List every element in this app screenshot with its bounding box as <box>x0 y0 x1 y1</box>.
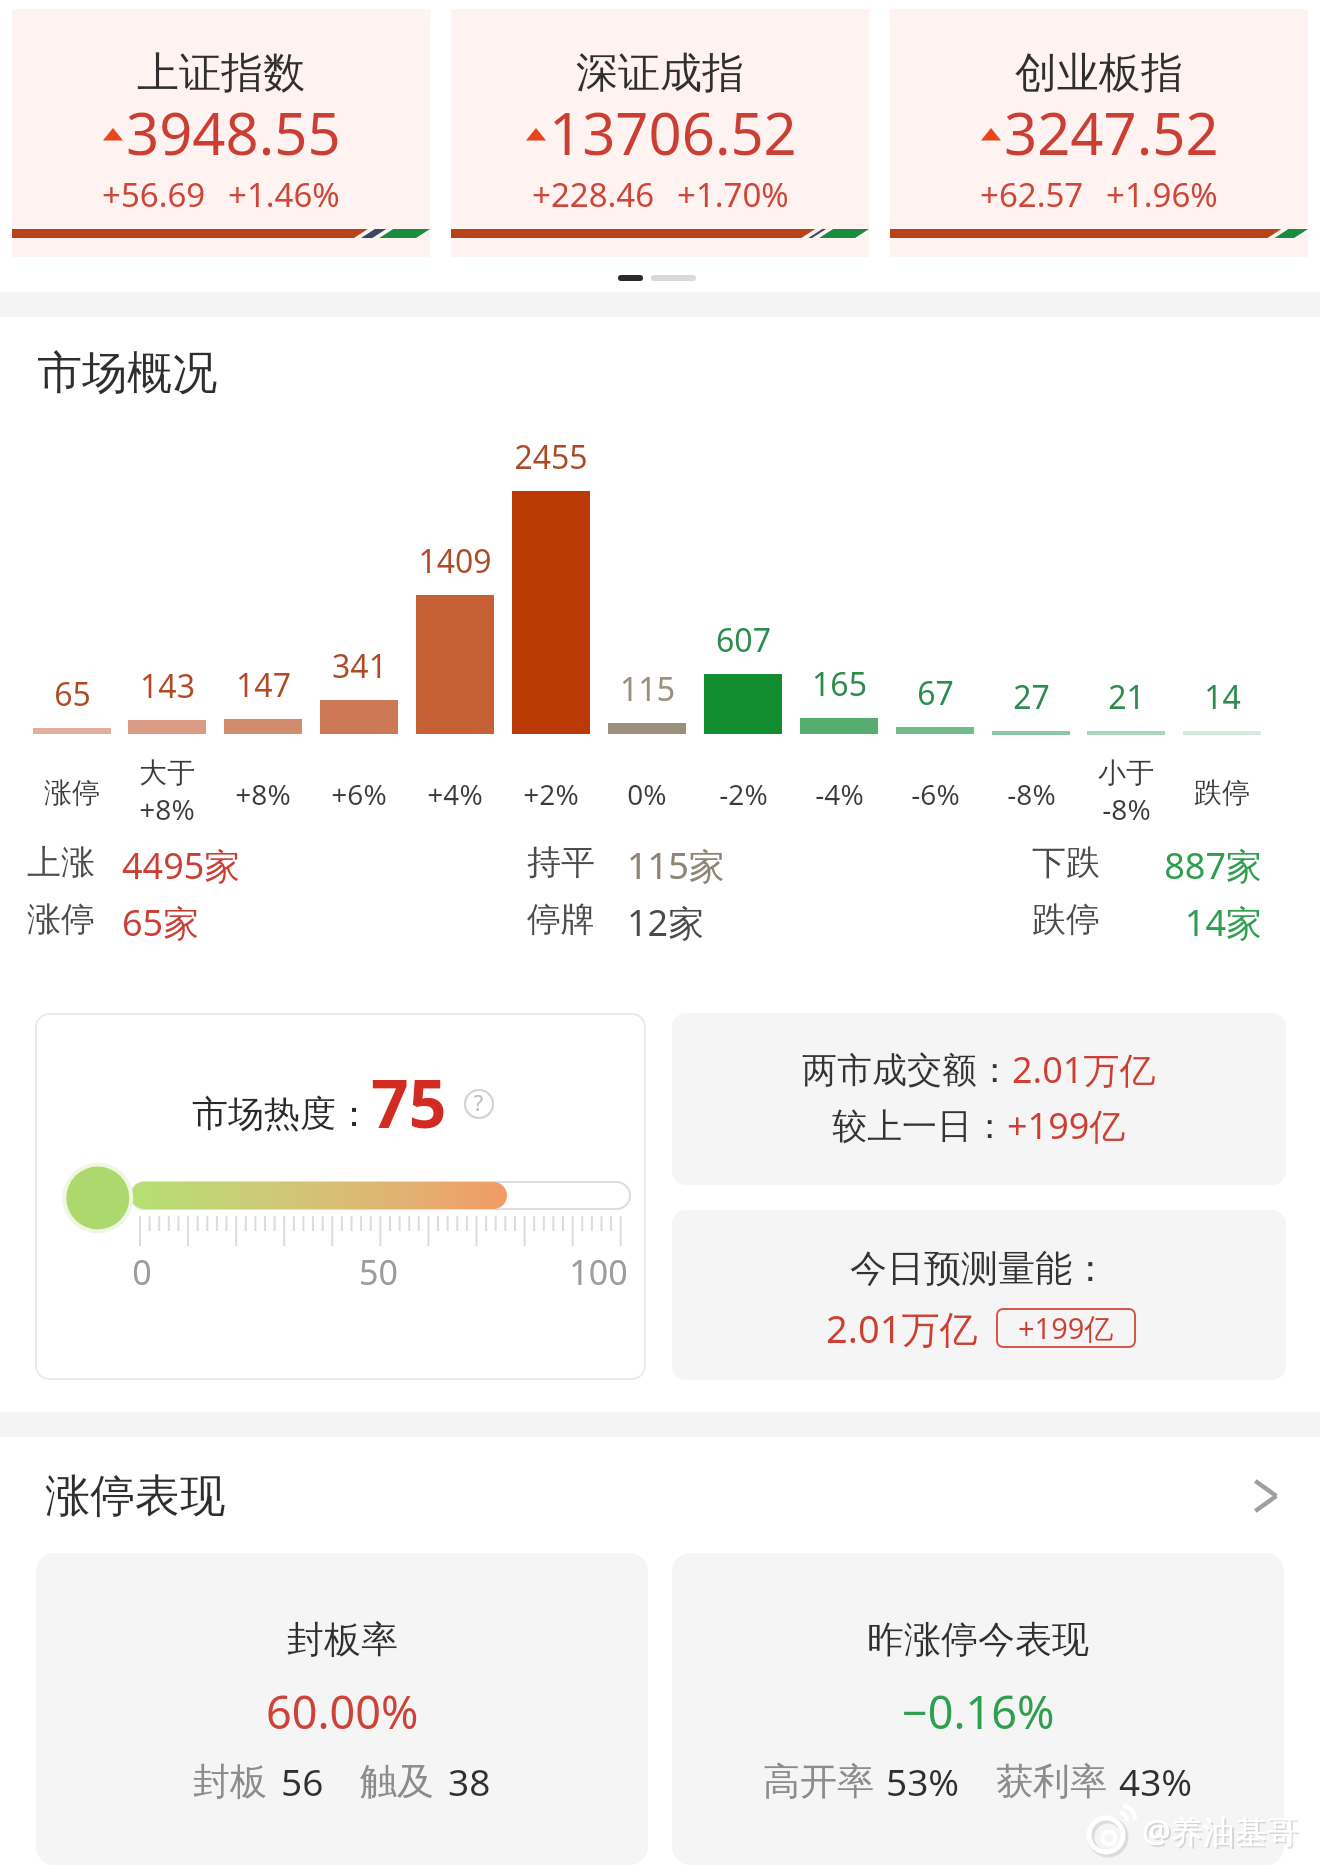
staticText: 创业板指 <box>1015 47 1183 100</box>
staticText: 涨停表现 <box>45 1468 225 1525</box>
staticText: +2% <box>523 775 579 813</box>
button[interactable]: 创业板指 <box>890 9 1308 257</box>
staticText: 4495家 <box>122 841 241 890</box>
staticText: 昨涨停今表现 <box>867 1616 1089 1663</box>
button[interactable]: 市场热度： <box>35 1013 646 1380</box>
staticText: +6% <box>331 775 387 813</box>
staticText: 市场概况 <box>37 345 217 402</box>
staticText: 涨停 <box>27 898 95 941</box>
button[interactable]: 昨涨停今表现 <box>672 1553 1284 1865</box>
staticText: 3948.55 <box>126 93 341 172</box>
staticText: 115家 <box>627 841 725 890</box>
staticText: 持平 <box>527 841 595 884</box>
staticText: 67 <box>917 671 954 715</box>
staticText: −0.16% <box>902 1681 1055 1742</box>
staticText: 12家 <box>627 898 705 947</box>
staticText: -6% <box>911 775 960 813</box>
staticText: 封板 <box>193 1758 267 1805</box>
staticText: 887家 <box>962 841 1262 890</box>
staticText: 143 <box>140 664 195 708</box>
button[interactable]: 深证成指 <box>451 9 869 257</box>
staticText: +228.46 <box>532 172 655 217</box>
other: More <box>1246 1474 1290 1518</box>
button[interactable]: 封板率 <box>36 1553 648 1865</box>
staticText: 341 <box>332 644 387 688</box>
staticText: 607 <box>716 618 771 662</box>
staticText: 2.01万亿 <box>826 1302 978 1354</box>
staticText: 高开率 <box>763 1758 874 1805</box>
staticText: 上涨 <box>27 841 95 884</box>
staticText: 触及 <box>360 1758 434 1805</box>
staticText: -4% <box>815 775 864 813</box>
staticText: 14家 <box>962 898 1262 947</box>
staticText: @养油基哥 <box>1144 1811 1301 1855</box>
staticText: 21 <box>1108 675 1145 719</box>
staticText: 2.01万亿 <box>1012 1045 1156 1094</box>
staticText: 43% <box>1119 1756 1193 1806</box>
staticText: 2455 <box>514 435 588 479</box>
staticText: 165 <box>812 662 867 706</box>
staticText: 0 <box>132 1249 152 1295</box>
button[interactable]: 今日预测量能： <box>672 1210 1286 1380</box>
staticText: 75 <box>371 1057 447 1147</box>
staticText: 56 <box>281 1756 324 1806</box>
button[interactable]: 涨停表现 <box>0 1461 1320 1531</box>
staticText: 大于 <box>139 755 195 790</box>
staticText: 38 <box>448 1756 491 1806</box>
staticText: 两市成交额： <box>802 1048 1012 1092</box>
staticText: 上证指数 <box>137 47 305 100</box>
staticText: +1.96% <box>1106 172 1218 217</box>
staticText: +56.69 <box>102 172 206 217</box>
staticText: 13706.52 <box>549 93 797 172</box>
staticText: 100 <box>569 1249 628 1295</box>
staticText: 市场热度： <box>192 1091 372 1136</box>
staticText: 50 <box>359 1249 398 1295</box>
staticText: +1.46% <box>228 172 340 217</box>
staticText: 跌停 <box>1194 775 1250 810</box>
staticText: 获利率 <box>996 1758 1107 1805</box>
staticText: +199亿 <box>1018 1308 1114 1348</box>
staticText: 14 <box>1204 675 1241 719</box>
staticText: +62.57 <box>980 172 1084 217</box>
staticText: 深证成指 <box>576 47 744 100</box>
staticText: +8% <box>235 775 291 813</box>
staticText: 0% <box>627 775 667 813</box>
staticText: 小于 <box>1098 755 1154 790</box>
staticText: 涨停 <box>44 775 100 810</box>
staticText: 147 <box>236 663 291 707</box>
button[interactable]: 上证指数 <box>12 9 430 257</box>
staticText: @养油基哥 <box>1142 1809 1299 1853</box>
staticText: +1.70% <box>677 172 789 217</box>
staticText: 跌停 <box>1032 898 1100 941</box>
staticText: 60.00% <box>266 1681 419 1742</box>
staticText: 3247.52 <box>1004 93 1219 172</box>
staticText: 65 <box>54 672 91 716</box>
staticText: +4% <box>427 775 483 813</box>
staticText: -8% <box>1102 790 1151 828</box>
staticText: 停牌 <box>527 898 595 941</box>
staticText: 封板率 <box>287 1616 398 1663</box>
staticText: -2% <box>719 775 768 813</box>
staticText: 较上一日： <box>832 1104 1007 1148</box>
button[interactable]: 两市成交额： <box>672 1013 1286 1185</box>
staticText: +199亿 <box>1007 1101 1126 1150</box>
staticText: 下跌 <box>1032 841 1100 884</box>
staticText: 今日预测量能： <box>850 1245 1109 1292</box>
staticText: -8% <box>1007 775 1056 813</box>
staticText: 27 <box>1013 675 1050 719</box>
staticText: 115 <box>620 667 675 711</box>
staticText: +8% <box>139 790 195 828</box>
staticText: 1409 <box>418 539 492 583</box>
staticText: 65家 <box>122 898 200 947</box>
staticText: 53% <box>886 1756 960 1806</box>
staticText: ? <box>474 1089 484 1118</box>
